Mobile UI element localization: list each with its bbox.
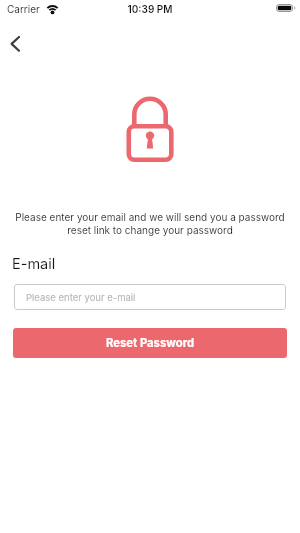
staticText: Carrier	[7, 3, 40, 15]
staticText: Reset Password	[106, 336, 195, 350]
button[interactable]: Reset Password	[13, 328, 287, 358]
staticText: Please enter your e-mail	[26, 292, 136, 303]
staticText: E-mail	[12, 255, 56, 273]
button[interactable]: Please enter your e-mail	[14, 284, 286, 310]
button[interactable]	[2, 30, 32, 58]
staticText: 10:39 PM	[0, 3, 300, 15]
staticText: Please enter your email and we will send…	[0, 211, 300, 236]
